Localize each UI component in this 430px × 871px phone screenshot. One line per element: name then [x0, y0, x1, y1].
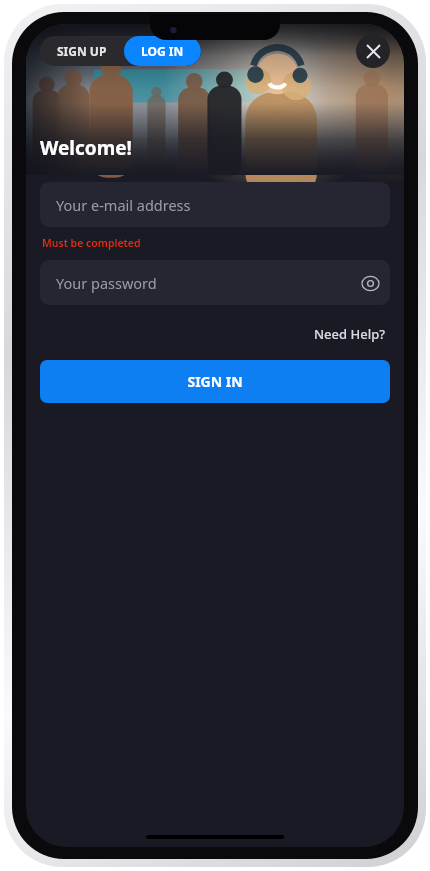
staticText: Your password: [56, 273, 157, 293]
staticText: SIGN UP: [57, 43, 107, 59]
staticText: LOG IN: [141, 43, 184, 59]
button[interactable]: Close: [356, 34, 390, 68]
staticText: Welcome!: [40, 135, 132, 161]
button[interactable]: Your password: [40, 260, 390, 305]
staticText: Need Help?: [314, 325, 386, 343]
button[interactable]: LOG IN: [124, 36, 201, 66]
button[interactable]: SIGN UP: [40, 36, 124, 66]
staticText: SIGN IN: [187, 372, 243, 391]
button[interactable]: Show password: [350, 263, 390, 303]
staticText: Must be completed: [42, 236, 141, 250]
button[interactable]: Need Help?: [310, 322, 390, 346]
button[interactable]: Your e-mail address: [40, 182, 390, 227]
staticText: Your e-mail address: [56, 195, 191, 215]
button[interactable]: SIGN IN: [40, 360, 390, 403]
